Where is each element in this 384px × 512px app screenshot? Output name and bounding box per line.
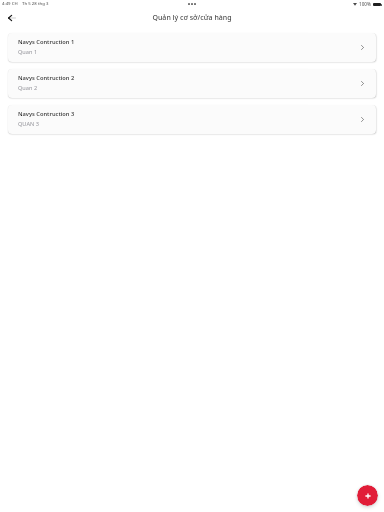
button[interactable]: Add (357, 485, 378, 506)
staticText: Quan 1 (18, 48, 38, 56)
button[interactable]: Back (4, 10, 20, 26)
staticText: Navys Contruction 3 (18, 110, 75, 118)
staticText: Quản lý cơ sở/cửa hàng (152, 13, 232, 23)
button[interactable]: Navys Contruction 2 (8, 69, 376, 98)
staticText: Navys Contruction 2 (18, 74, 75, 82)
button[interactable]: Navys Contruction 3 (8, 105, 376, 134)
button[interactable]: Navys Contruction 1 (8, 33, 376, 62)
staticText: Quan 2 (18, 84, 38, 92)
staticText: Navys Contruction 1 (18, 38, 75, 46)
staticText: 100% (359, 1, 371, 7)
staticText: QUAN 3 (18, 120, 39, 128)
staticText: 4:49 CH Th 5 28 thg 3 (2, 0, 49, 6)
